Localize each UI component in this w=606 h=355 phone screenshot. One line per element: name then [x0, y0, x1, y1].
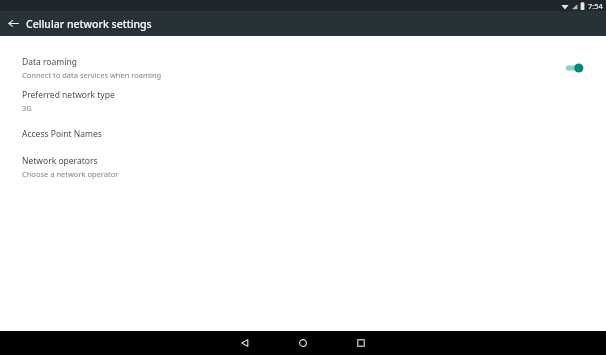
- staticText: Connect to data services when roaming: [22, 70, 162, 80]
- button[interactable]: Recent apps: [341, 331, 381, 355]
- staticText: Data roaming: [22, 56, 77, 68]
- staticText: 3G: [22, 103, 32, 113]
- staticText: Cellular network settings: [26, 17, 152, 31]
- staticText: Access Point Names: [22, 128, 102, 140]
- button[interactable]: Access Point Names: [0, 117, 606, 150]
- button[interactable]: Data roaming toggle: [562, 60, 586, 76]
- staticText: Choose a network operator: [22, 169, 119, 179]
- button[interactable]: Network operators: [0, 150, 606, 183]
- button[interactable]: Back: [225, 331, 265, 355]
- button[interactable]: Preferred network type: [0, 84, 606, 117]
- staticText: 7:54: [588, 1, 603, 11]
- button[interactable]: Home: [283, 331, 323, 355]
- button[interactable]: Back: [0, 11, 26, 36]
- staticText: Preferred network type: [22, 89, 115, 101]
- button[interactable]: Data roaming: [0, 51, 606, 84]
- staticText: Network operators: [22, 155, 98, 167]
